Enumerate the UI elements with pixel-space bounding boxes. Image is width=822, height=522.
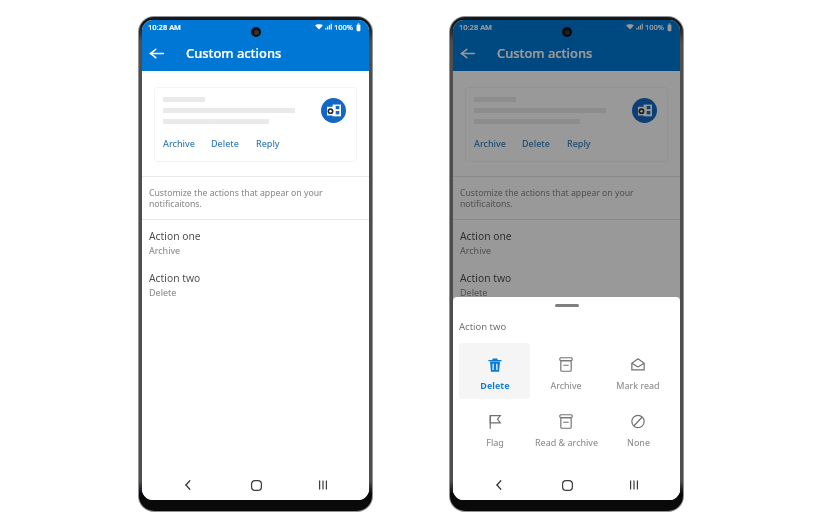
button[interactable]: Navigate up	[455, 41, 479, 65]
button[interactable]: Reply	[256, 137, 280, 149]
button[interactable]: Action one	[453, 220, 680, 262]
button[interactable]: Home	[244, 473, 268, 497]
staticText: Delete	[211, 137, 239, 149]
button[interactable]: Archive	[530, 343, 602, 399]
button[interactable]: Action two	[453, 262, 680, 304]
staticText: Archive	[163, 137, 195, 149]
button[interactable]: Outlook	[321, 98, 346, 123]
staticText: Action two	[459, 320, 507, 333]
staticText: Action two	[460, 271, 512, 285]
staticText: Action one	[460, 229, 512, 243]
staticText: Action one	[149, 229, 201, 243]
staticText: 100%	[334, 22, 354, 32]
button[interactable]: Back	[487, 473, 511, 497]
button[interactable]: Delete	[459, 343, 530, 399]
button[interactable]: Outlook	[632, 98, 657, 123]
button[interactable]: Archive	[163, 137, 195, 149]
staticText: Archive	[474, 137, 506, 149]
staticText: Delete	[149, 286, 177, 298]
button[interactable]: Recent apps	[622, 473, 646, 497]
staticText: Mark read	[616, 379, 660, 391]
staticText: 10:28 AM	[459, 22, 492, 32]
button[interactable]: Home	[555, 473, 579, 497]
button[interactable]: Navigate up	[144, 41, 168, 65]
staticText: Custom actions	[497, 44, 593, 62]
staticText: Delete	[460, 286, 488, 298]
staticText: Read & archive	[535, 436, 598, 448]
button[interactable]: Archive	[474, 137, 506, 149]
button[interactable]: Home	[555, 473, 579, 497]
staticText: None	[627, 436, 650, 448]
button[interactable]: Flag	[459, 400, 530, 456]
button[interactable]: Action two	[142, 262, 369, 304]
staticText: Archive	[550, 379, 582, 391]
button[interactable]: None	[602, 400, 674, 456]
staticText: Archive	[149, 244, 181, 256]
button[interactable]: Delete	[522, 137, 550, 149]
staticText: Flag	[486, 436, 504, 448]
staticText: 100%	[645, 22, 665, 32]
button[interactable]: Read & archive	[530, 400, 602, 456]
button[interactable]: Delete	[211, 137, 239, 149]
button[interactable]: Reply	[567, 137, 591, 149]
button[interactable]: Back	[176, 473, 200, 497]
staticText: Customize the actions that appear on you…	[149, 187, 323, 210]
button[interactable]: Action one	[142, 220, 369, 262]
staticText: Customize the actions that appear on you…	[460, 187, 634, 210]
button[interactable]: Back	[487, 473, 511, 497]
staticText: Delete	[480, 379, 510, 391]
staticText: Archive	[460, 244, 492, 256]
staticText: Reply	[567, 137, 591, 149]
button[interactable]: Recent apps	[311, 473, 335, 497]
staticText: 10:28 AM	[148, 22, 181, 32]
staticText: Action two	[149, 271, 201, 285]
staticText: Reply	[256, 137, 280, 149]
staticText: Delete	[522, 137, 550, 149]
button[interactable]: Recent apps	[622, 473, 646, 497]
button[interactable]: Mark read	[602, 343, 674, 399]
staticText: Custom actions	[186, 44, 282, 62]
